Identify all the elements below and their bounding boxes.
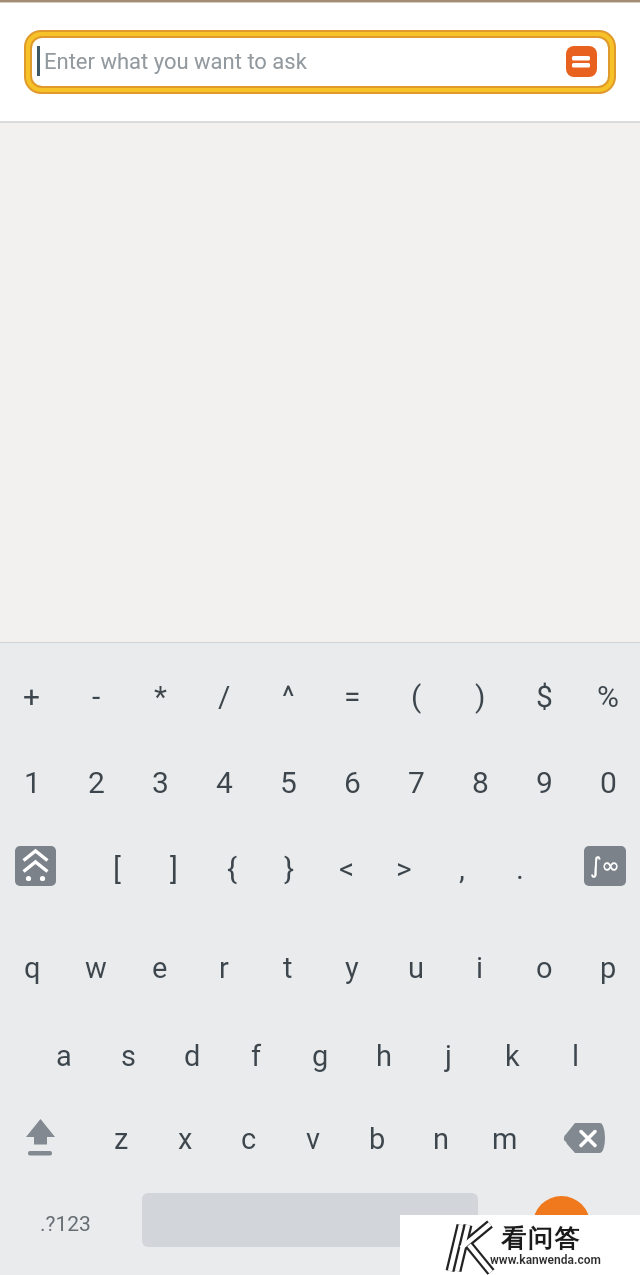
button[interactable]: { [200,838,264,898]
button[interactable]: f [224,1026,288,1086]
button[interactable]: e [128,938,192,998]
button[interactable]: o [512,938,576,998]
staticText: ] [170,851,178,886]
staticText: i [476,951,484,985]
button[interactable]: k [480,1026,544,1086]
staticText: s [121,1039,136,1073]
button[interactable]: * [128,666,192,726]
button[interactable]: j [416,1026,480,1086]
button[interactable]: 9 [512,752,576,812]
staticText: m [492,1122,518,1156]
button[interactable]: s [96,1026,160,1086]
staticText: ^ [282,679,295,714]
staticText: o [536,951,553,985]
button[interactable]: q [0,938,64,998]
button[interactable] [533,1196,590,1253]
button[interactable]: 4 [192,752,256,812]
staticText: 9 [536,765,553,800]
staticText: > [396,851,412,886]
button[interactable]: % [576,666,640,726]
staticText: Enter what you want to ask [44,49,307,75]
button[interactable]: [ [85,838,149,898]
button[interactable]: ) [448,666,512,726]
staticText: - [92,679,101,714]
button[interactable]: g [288,1026,352,1086]
button[interactable]: ] [142,838,206,898]
staticText: * [154,679,167,714]
staticText: t [283,951,293,985]
staticText: 1 [24,765,41,800]
staticText: [ [113,851,121,886]
staticText: + [23,679,41,714]
button[interactable]: t [256,938,320,998]
button[interactable]: , [430,838,494,898]
button[interactable]: 6 [320,752,384,812]
button[interactable]: .?123 [40,1196,120,1252]
button[interactable]: u [384,938,448,998]
button[interactable]: a [32,1026,96,1086]
button[interactable] [566,46,597,77]
button[interactable]: d [160,1026,224,1086]
button[interactable] [14,1108,68,1164]
button[interactable]: h [352,1026,416,1086]
staticText: 0 [600,765,617,800]
button[interactable]: 3 [128,752,192,812]
button[interactable]: p [576,938,640,998]
button[interactable]: y [320,938,384,998]
button[interactable] [15,846,56,886]
staticText: 2 [88,765,105,800]
button[interactable]: 8 [448,752,512,812]
button[interactable]: n [409,1109,473,1169]
button[interactable]: 2 [64,752,128,812]
button[interactable] [24,30,616,94]
staticText: ( [411,679,422,714]
button[interactable]: $ [512,666,576,726]
staticText: f [251,1039,262,1073]
button[interactable]: / [192,666,256,726]
button[interactable]: 1 [0,752,64,812]
button[interactable]: m [473,1109,537,1169]
staticText: e [152,951,168,985]
button[interactable]: z [89,1109,153,1169]
button[interactable]: i [448,938,512,998]
staticText: q [24,951,41,985]
staticText: ) [475,679,486,714]
button[interactable]: l [544,1026,608,1086]
button[interactable]: + [0,666,64,726]
button[interactable]: ^ [256,666,320,726]
staticText: < [339,851,355,886]
staticText: 6 [344,765,361,800]
button[interactable]: = [320,666,384,726]
staticText: x [178,1122,193,1156]
staticText: 4 [216,765,233,800]
button[interactable]: - [64,666,128,726]
button[interactable]: w [64,938,128,998]
button[interactable]: . [488,838,552,898]
staticText: p [600,951,617,985]
button[interactable]: < [315,838,379,898]
button[interactable]: > [372,838,436,898]
button[interactable]: 7 [384,752,448,812]
button[interactable] [142,1193,478,1247]
staticText: $ [536,679,553,714]
staticText: z [114,1122,129,1156]
button[interactable]: ( [384,666,448,726]
button[interactable]: r [192,938,256,998]
button[interactable]: } [257,838,321,898]
staticText: h [376,1039,392,1073]
button[interactable]: 5 [256,752,320,812]
button[interactable]: ∫∞ [584,846,626,886]
staticText: l [572,1039,580,1073]
staticText: 看问答 [501,1223,581,1254]
button[interactable]: c [217,1109,281,1169]
button[interactable] [556,1108,616,1164]
button[interactable]: v [281,1109,345,1169]
button[interactable]: x [153,1109,217,1169]
staticText: = [344,679,361,714]
staticText: 3 [152,765,169,800]
button[interactable]: 0 [576,752,640,812]
staticText: g [312,1039,329,1073]
staticText: c [241,1122,257,1156]
button[interactable]: b [345,1109,409,1169]
staticText: .?123 [40,1212,91,1237]
